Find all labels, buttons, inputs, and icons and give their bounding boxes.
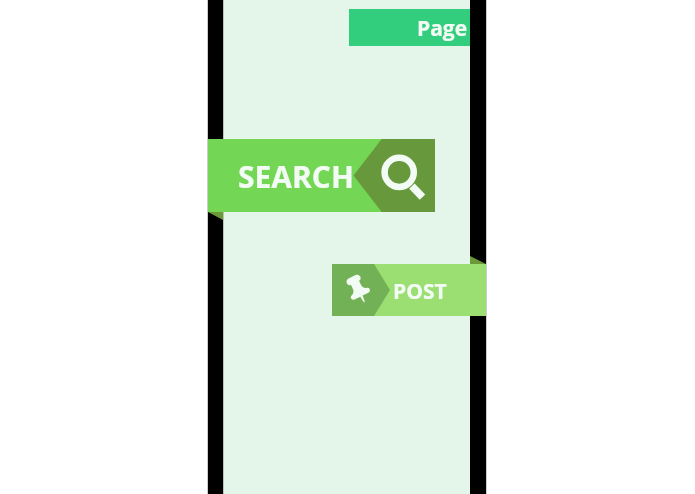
other: Pin post xyxy=(342,273,374,305)
other: Search xyxy=(381,155,431,205)
button[interactable]: SEARCH xyxy=(208,139,435,212)
staticText: Page xyxy=(417,14,468,43)
staticText: SEARCH xyxy=(238,156,354,197)
button[interactable]: POST xyxy=(332,264,486,316)
staticText: POST xyxy=(393,277,447,306)
button[interactable]: Page xyxy=(349,9,486,46)
